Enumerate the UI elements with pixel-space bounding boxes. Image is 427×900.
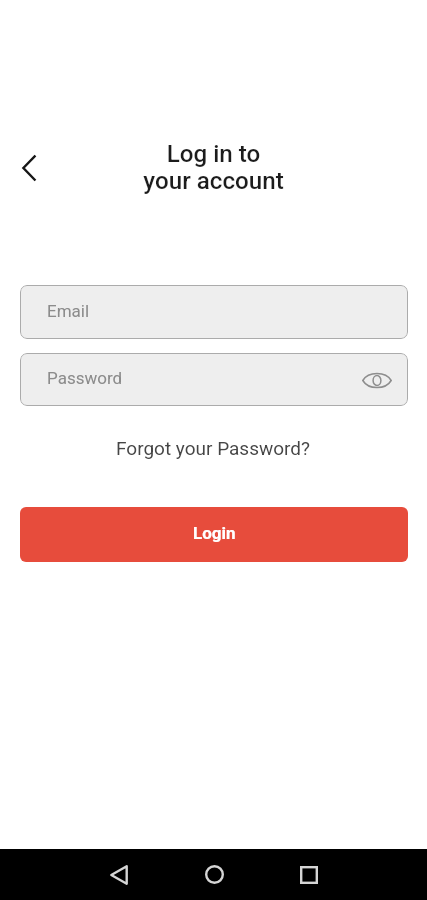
button[interactable]: Email <box>20 285 408 339</box>
button[interactable]: Password <box>20 353 408 406</box>
staticText: Login <box>193 523 236 543</box>
button[interactable]: Back <box>9 148 49 188</box>
button[interactable]: Recent apps <box>287 853 330 896</box>
button[interactable]: Home <box>193 853 236 896</box>
button[interactable]: Show password <box>361 364 393 396</box>
staticText: Password <box>47 368 123 388</box>
button[interactable]: Login <box>20 507 408 562</box>
button[interactable]: Forgot your Password? <box>108 431 319 465</box>
staticText: Email <box>47 301 90 321</box>
staticText: Forgot your Password? <box>116 437 311 459</box>
staticText: Log in to your account <box>0 140 427 195</box>
button[interactable]: Back <box>97 853 140 896</box>
